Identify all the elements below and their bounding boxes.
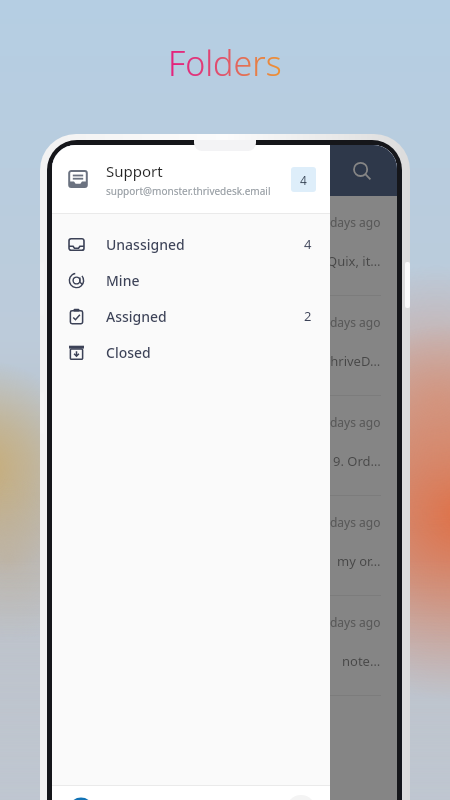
staticText: Quix, it…	[327, 252, 381, 270]
staticText: 4	[300, 172, 307, 188]
staticText: 8 days ago	[320, 614, 381, 630]
staticText: 3 days ago	[320, 214, 381, 230]
staticText: 2	[304, 307, 312, 325]
button[interactable]: 6 days ago	[52, 396, 397, 496]
button[interactable]: 7 days ago	[52, 496, 397, 596]
button[interactable]: Search	[345, 154, 379, 188]
button[interactable]: Mine	[52, 262, 330, 298]
button[interactable]: 3 days ago	[52, 196, 397, 296]
staticText: support@monster.thrivedesk.email	[106, 184, 271, 198]
button[interactable]: Closed	[52, 334, 330, 370]
button[interactable]: Assigned	[52, 298, 330, 334]
staticText: Folders	[168, 40, 282, 86]
staticText: my or…	[337, 552, 381, 570]
button[interactable]: Menu	[66, 154, 100, 188]
staticText: Unassigned	[106, 235, 304, 254]
button[interactable]: Settings	[286, 795, 316, 800]
button[interactable]: Support	[52, 145, 330, 213]
staticText: 9. Ord…	[333, 452, 381, 470]
staticText: Assigned	[106, 307, 304, 326]
button[interactable]: 8 days ago	[52, 596, 397, 696]
staticText: Mine	[106, 271, 312, 290]
staticText: 5 days ago	[320, 314, 381, 330]
staticText: 6 days ago	[320, 414, 381, 430]
staticText: Support	[106, 161, 163, 181]
button[interactable]: Support	[68, 797, 286, 800]
staticText: 4	[304, 235, 312, 253]
staticText: ThriveD…	[323, 352, 381, 370]
staticText: Closed	[106, 343, 312, 362]
button[interactable]: Unassigned	[52, 226, 330, 262]
button[interactable]: 5 days ago	[52, 296, 397, 396]
staticText: note…	[342, 652, 381, 670]
staticText: 7 days ago	[320, 514, 381, 530]
